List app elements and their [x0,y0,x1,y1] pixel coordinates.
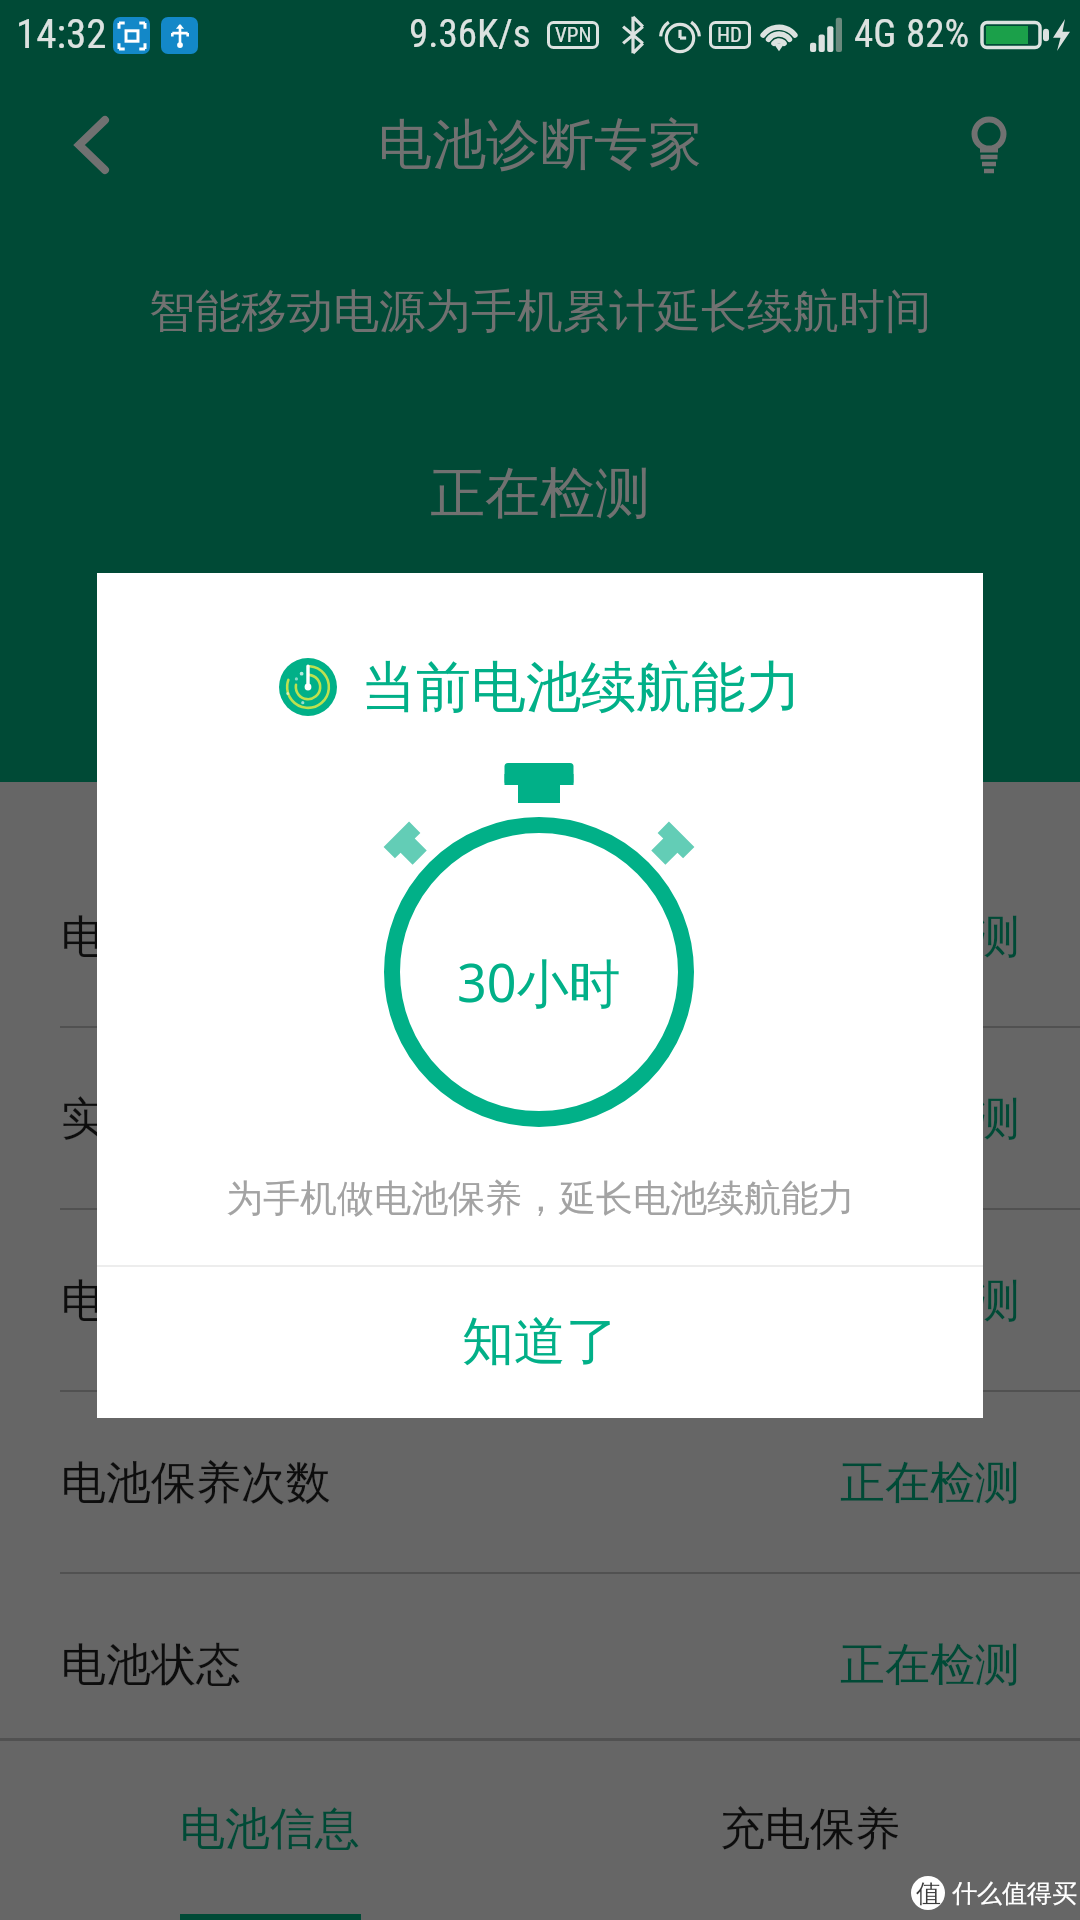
staticText: 电池信息 [180,1801,360,1858]
staticText: 电池状态 [61,1637,241,1694]
staticText: 正在检测 [430,459,650,528]
staticText: VPN [555,23,592,48]
button[interactable]: 电池容量 [0,846,1080,1028]
staticText: 充电保养 [720,1801,900,1858]
button[interactable]: 实际电量 [0,1028,1080,1210]
staticText: 4G [854,11,897,57]
staticText: 82% [906,11,970,57]
staticText: 正在检测 [840,1455,1020,1512]
button[interactable]: Tips [949,105,1029,185]
staticText: HD [717,23,743,48]
staticText: 14:32 [16,10,107,58]
staticText: 什么值得买 [952,1878,1077,1909]
button[interactable]: 电池保养次数 [0,1392,1080,1574]
staticText: 知道了 [462,1309,618,1375]
staticText: 值 [916,1878,941,1909]
staticText: 电池保养次数 [61,1455,331,1512]
staticText: 当前电池续航能力 [361,653,801,722]
staticText: 电池温度 [61,1273,241,1330]
button[interactable]: 电池温度 [0,1210,1080,1392]
button[interactable]: Back [52,105,132,185]
staticText: 电池诊断专家 [378,111,702,179]
staticText: 智能移动电源为手机累计延长续航时间 [149,283,931,341]
staticText: 正在检测 [840,909,1020,966]
staticText: 为手机做电池保养，延长电池续航能力 [226,1175,855,1222]
staticText: 正在检测 [840,1273,1020,1330]
button[interactable]: 充电保养 [540,1741,1080,1920]
staticText: 正在检测 [840,1091,1020,1148]
button[interactable]: 电池信息 [0,1741,540,1920]
button[interactable]: 知道了 [97,1267,983,1417]
staticText: 正在检测 [840,1637,1020,1694]
staticText: 9.36K/s [409,11,531,57]
staticText: 电池容量 [61,909,241,966]
staticText: 实际电量 [61,1091,241,1148]
staticText: 30小时 [457,946,621,1017]
button[interactable]: 电池状态 [0,1574,1080,1756]
